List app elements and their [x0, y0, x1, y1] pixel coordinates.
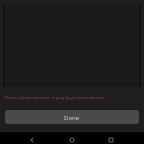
- staticText: Please upload minimum in jpeg/jpg/png fo…: [5, 95, 139, 100]
- button[interactable]: Recents: [104, 134, 118, 144]
- button[interactable]: Back: [25, 134, 39, 144]
- button[interactable]: Home: [65, 134, 79, 144]
- button[interactable]: Done: [5, 110, 139, 124]
- staticText: Done: [64, 114, 80, 122]
